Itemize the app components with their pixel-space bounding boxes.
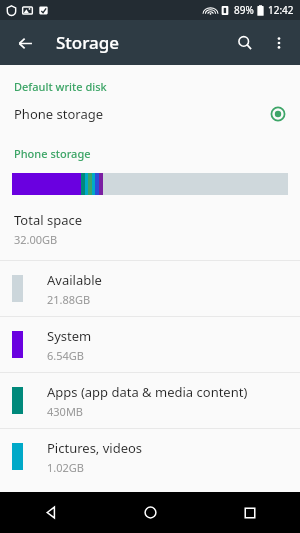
staticText: Total space: [14, 211, 82, 229]
staticText: Phone storage: [14, 105, 270, 123]
staticText: System: [47, 327, 92, 345]
staticText: Apps (app data & media content): [47, 383, 248, 401]
button[interactable]: Home: [100, 492, 200, 533]
staticText: 32.00GB: [14, 232, 58, 247]
staticText: 1.02GB: [47, 460, 84, 475]
staticText: Pictures, videos: [47, 439, 143, 457]
button[interactable]: Back: [8, 26, 42, 60]
staticText: 89%: [234, 3, 254, 17]
button[interactable]: More options: [262, 26, 296, 60]
staticText: 12:42: [268, 3, 294, 17]
button[interactable]: System: [0, 317, 300, 372]
staticText: Phone storage: [14, 146, 91, 161]
button[interactable]: Search: [228, 26, 262, 60]
button[interactable]: Phone storage: [0, 94, 300, 134]
staticText: 21.88GB: [47, 292, 91, 307]
staticText: Available: [47, 271, 102, 289]
staticText: Storage: [56, 31, 120, 54]
staticText: Default write disk: [14, 79, 107, 94]
button[interactable]: Apps (app data & media content): [0, 373, 300, 428]
staticText: 430MB: [47, 404, 84, 419]
button[interactable]: Recent apps: [200, 492, 300, 533]
staticText: 6.54GB: [47, 348, 84, 363]
button[interactable]: Available: [0, 261, 300, 316]
button[interactable]: Back: [0, 492, 100, 533]
button[interactable]: Pictures, videos: [0, 429, 300, 484]
